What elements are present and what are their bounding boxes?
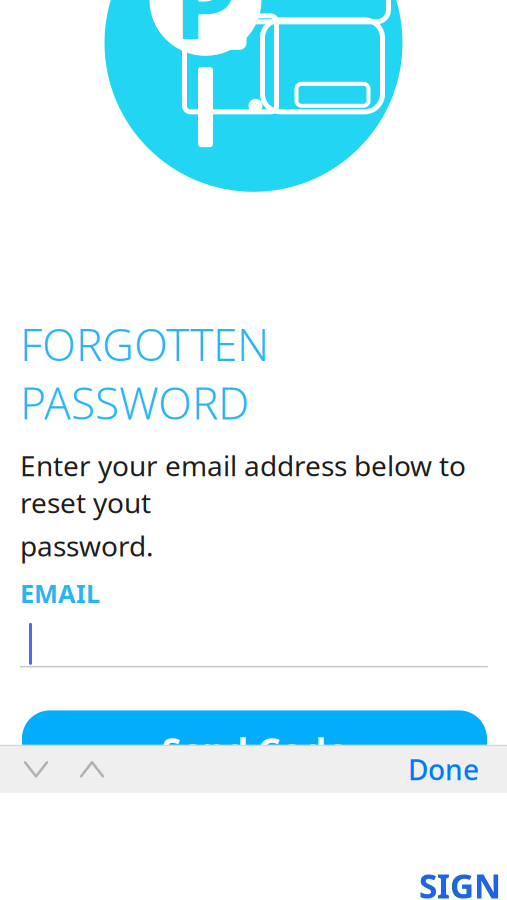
staticText: P	[174, 0, 237, 67]
button[interactable]	[20, 622, 488, 667]
staticText: Done	[408, 751, 479, 788]
staticText: FORGOTTEN PASSWORD	[20, 315, 269, 432]
staticText: Enter your email address below to reset …	[20, 447, 466, 521]
staticText: password.	[20, 527, 154, 564]
staticText: SIGN UP HERE	[419, 863, 505, 900]
button[interactable]: Next field	[64, 745, 120, 793]
button[interactable]: Done	[390, 745, 497, 793]
button[interactable]: SIGN UP HERE	[419, 863, 507, 900]
button[interactable]: Send Code	[22, 710, 487, 790]
staticText: EMAIL	[20, 576, 100, 610]
staticText: Send Code	[161, 726, 347, 774]
button[interactable]: Previous field	[8, 745, 64, 793]
